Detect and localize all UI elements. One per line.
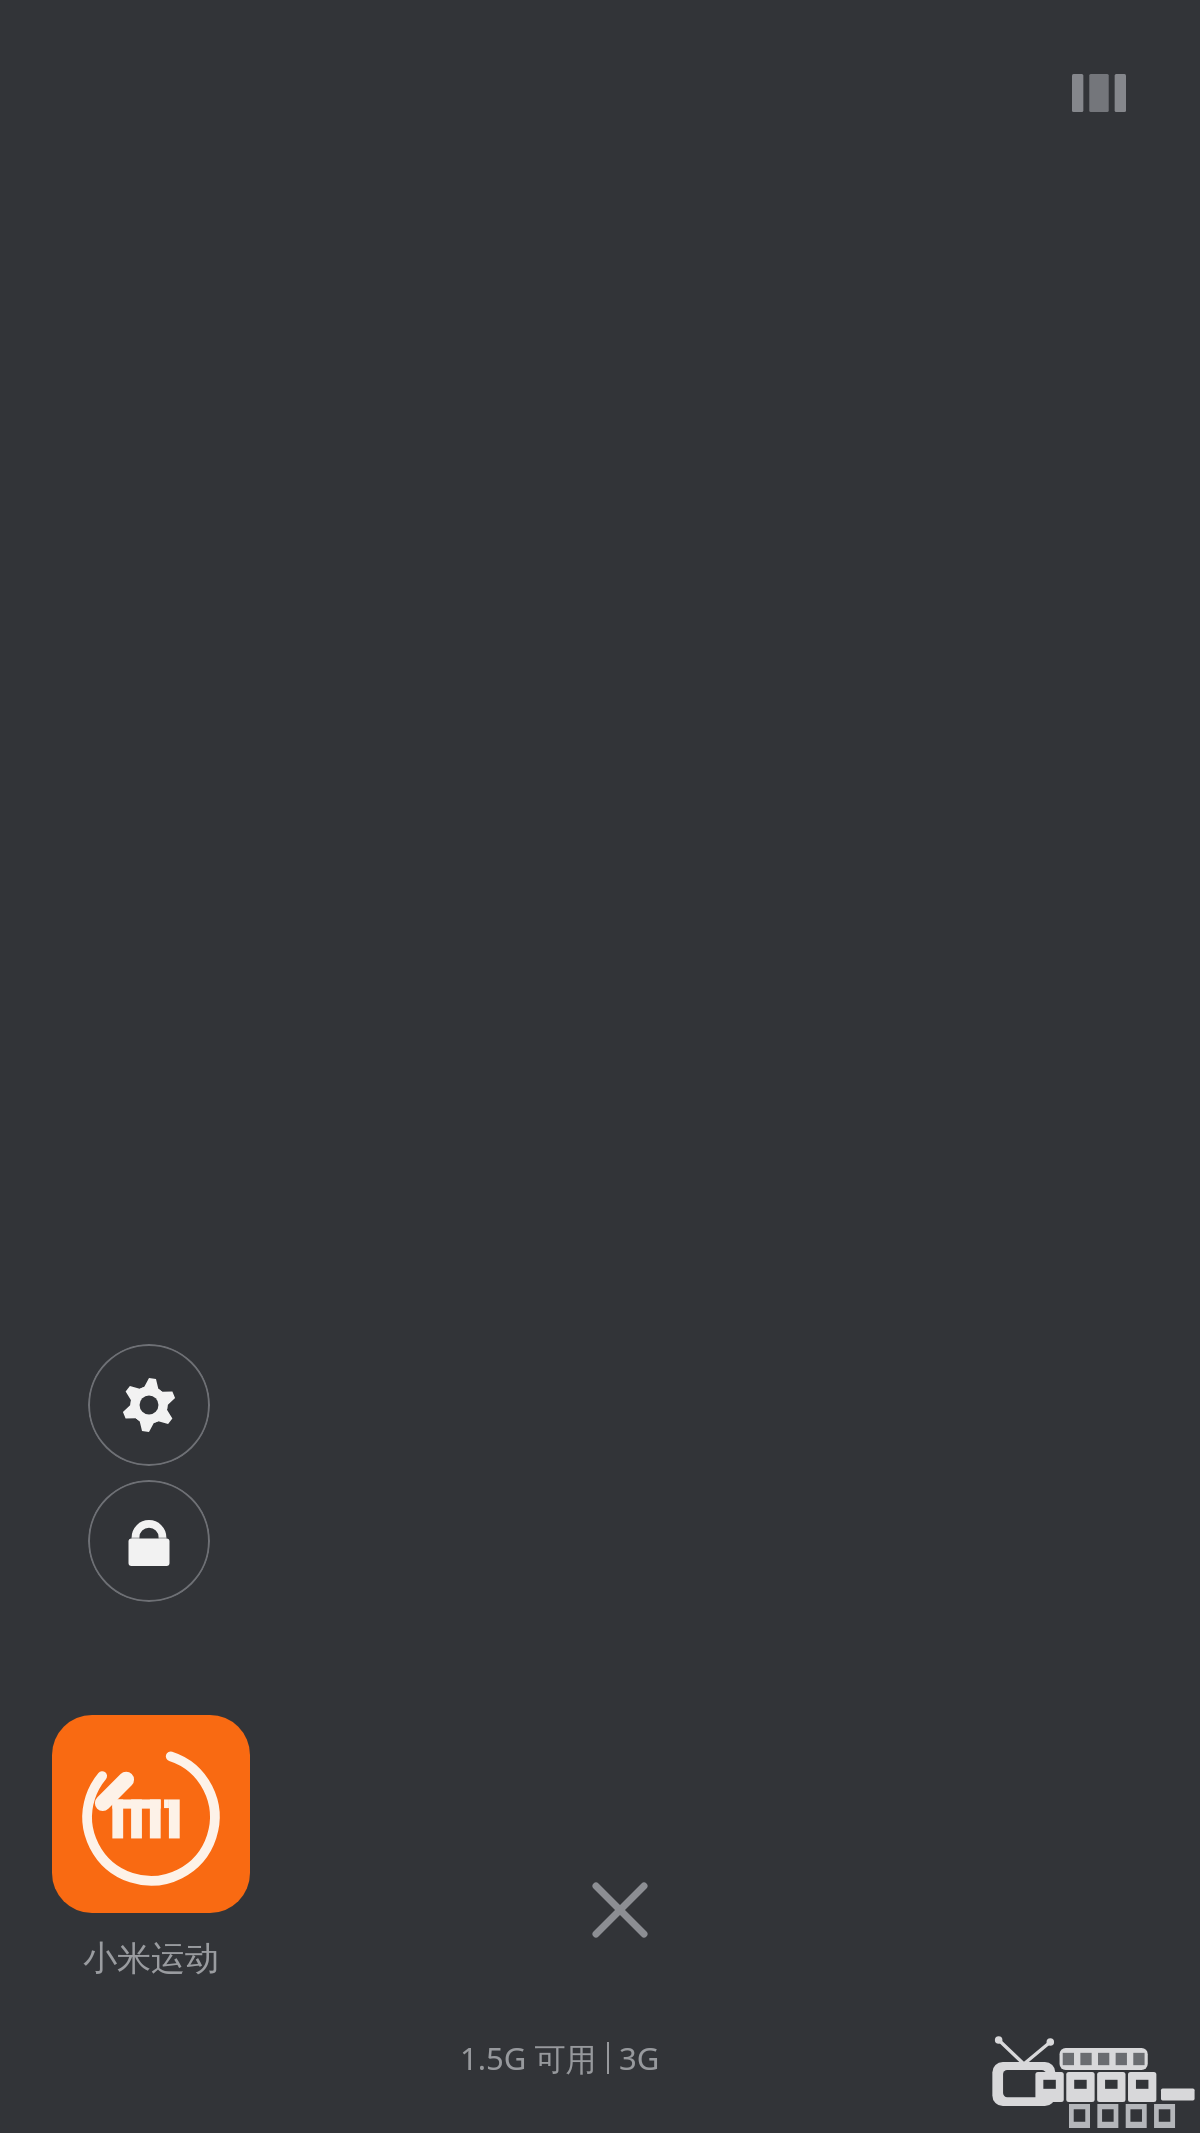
button[interactable]: 小米运动 (40, 1715, 262, 1980)
button[interactable]: Close all (570, 1860, 670, 1960)
staticText: 1.5G 可用 (460, 2037, 597, 2079)
button[interactable]: Lock (88, 1480, 210, 1602)
button[interactable]: Split screen menu (1043, 45, 1155, 141)
staticText: 小米运动 (83, 1937, 219, 1980)
staticText: 3G (619, 2037, 660, 2079)
button[interactable]: Settings (88, 1344, 210, 1466)
